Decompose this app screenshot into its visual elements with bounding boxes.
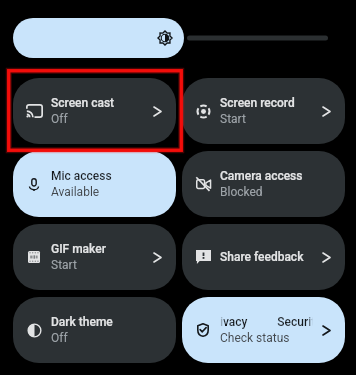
staticText: Camera access <box>220 169 303 183</box>
staticText: Privacy Security <box>220 315 301 329</box>
staticText: Screen cast <box>51 96 115 110</box>
staticText: Start <box>51 258 77 272</box>
staticText: Available <box>51 185 100 199</box>
button[interactable]: Brightness <box>13 18 184 58</box>
staticText: Off <box>51 112 68 126</box>
button[interactable]: Share feedback <box>182 224 345 290</box>
button[interactable]: Screen cast <box>13 78 176 144</box>
staticText: Mic access <box>51 169 112 183</box>
staticText: Share feedback <box>220 250 304 264</box>
button[interactable]: Dark theme <box>13 297 176 363</box>
staticText: Screen record <box>220 96 295 110</box>
button[interactable]: GIF maker <box>13 224 176 290</box>
staticText: Blocked <box>220 185 263 199</box>
staticText: Off <box>51 331 68 345</box>
staticText: GIF maker <box>51 242 106 256</box>
staticText: Start <box>220 112 246 126</box>
button[interactable]: Privacy Security <box>182 297 345 363</box>
staticText: Check status <box>220 331 290 345</box>
button[interactable]: Mic access <box>13 151 176 217</box>
button[interactable]: Screen record <box>182 78 345 144</box>
staticText: Dark theme <box>51 315 113 329</box>
button[interactable]: Camera access <box>182 151 345 217</box>
